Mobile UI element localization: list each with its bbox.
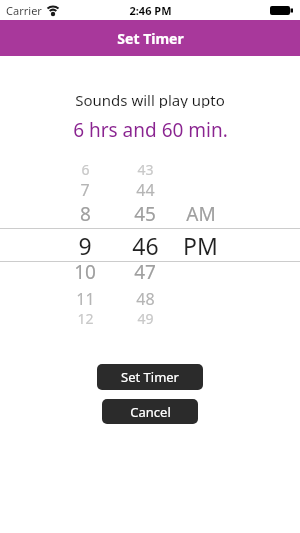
- staticText: 10: [74, 259, 96, 285]
- staticText: PM: [183, 230, 218, 256]
- staticText: 44: [136, 179, 155, 201]
- button[interactable]: Set Timer: [97, 364, 203, 390]
- staticText: 12: [77, 309, 94, 328]
- staticText: Carrier: [6, 3, 42, 18]
- staticText: 6: [81, 160, 90, 179]
- staticText: 48: [136, 288, 155, 310]
- staticText: 49: [137, 309, 154, 328]
- staticText: 46: [132, 230, 159, 256]
- button[interactable]: Cancel: [102, 399, 198, 424]
- staticText: 9: [78, 230, 92, 256]
- staticText: 45: [134, 201, 156, 227]
- staticText: Sounds will play upto: [75, 90, 225, 108]
- staticText: 2:46 PM: [129, 3, 172, 18]
- staticText: 47: [134, 259, 156, 285]
- staticText: 11: [76, 288, 95, 310]
- staticText: Set Timer: [121, 368, 179, 386]
- staticText: Cancel: [130, 403, 171, 421]
- staticText: AM: [186, 201, 216, 227]
- staticText: 7: [80, 179, 90, 201]
- staticText: 8: [80, 201, 91, 227]
- staticText: Set Timer: [117, 29, 184, 48]
- staticText: 43: [137, 160, 154, 179]
- staticText: 6 hrs and 60 min.: [73, 117, 228, 139]
